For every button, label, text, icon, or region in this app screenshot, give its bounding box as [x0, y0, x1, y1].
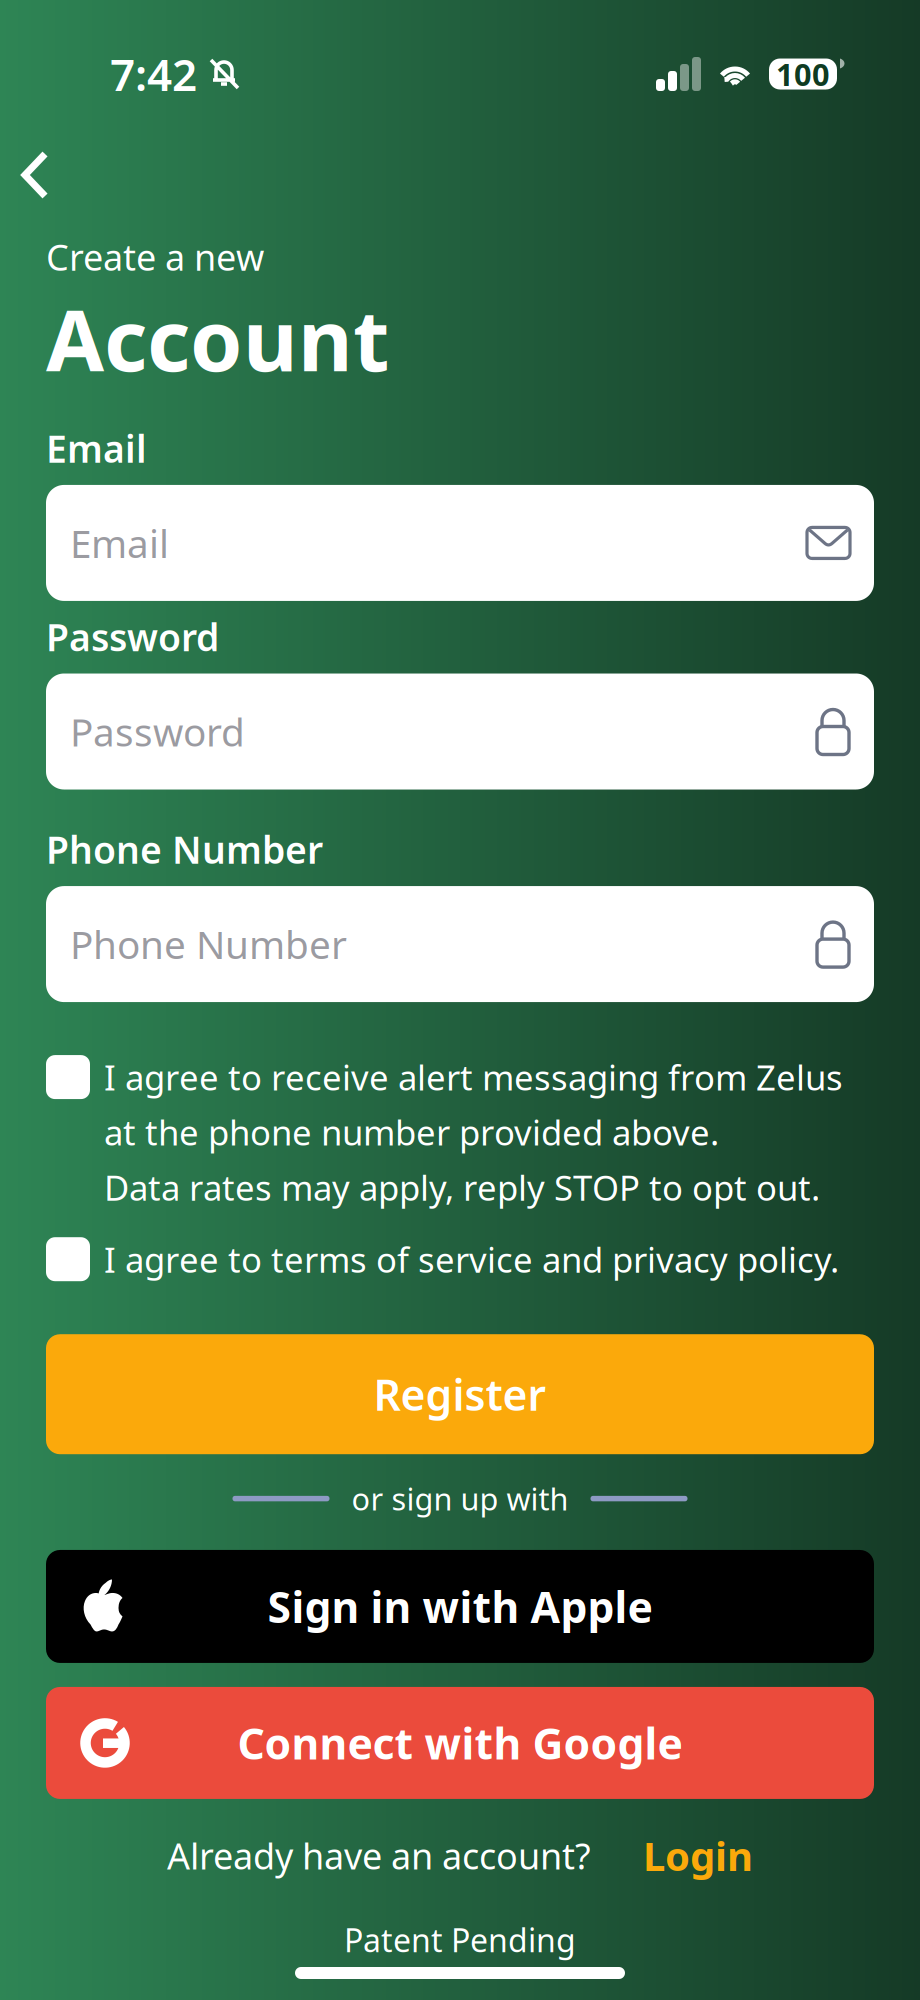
staticText: or sign up with — [351, 1478, 568, 1519]
button[interactable]: I agree to receive alert messaging from … — [46, 1054, 874, 1210]
staticText: 100 — [776, 54, 830, 94]
staticText: Account — [46, 283, 389, 394]
button[interactable]: Sign in with Apple — [46, 1550, 874, 1663]
staticText: Sign in with Apple — [267, 1578, 652, 1635]
staticText: Create a new — [46, 233, 264, 281]
staticText: I agree to receive alert messaging from … — [104, 1054, 843, 1100]
button[interactable]: Back — [0, 139, 78, 211]
staticText: Already have an account? — [167, 1832, 591, 1879]
staticText: 7:42 — [110, 45, 197, 103]
staticText: Password — [70, 706, 245, 757]
staticText: Phone Number — [70, 918, 347, 970]
staticText: Patent Pending — [344, 1918, 576, 1961]
staticText: Data rates may apply, reply STOP to opt … — [104, 1164, 820, 1210]
button[interactable]: I agree to terms of service and privacy … — [46, 1236, 874, 1282]
button[interactable]: Connect with Google — [46, 1687, 874, 1799]
staticText: Login — [643, 1829, 753, 1882]
staticText: Email — [46, 423, 147, 473]
staticText: I agree to terms of service and privacy … — [104, 1236, 839, 1282]
staticText: Phone Number — [46, 824, 323, 874]
staticText: Password — [46, 612, 219, 661]
staticText: at the phone number provided above. — [104, 1109, 719, 1155]
button[interactable]: Register — [46, 1334, 874, 1454]
button[interactable]: Login — [591, 1829, 753, 1882]
staticText: Connect with Google — [237, 1715, 682, 1771]
staticText: Email — [70, 517, 169, 569]
staticText: Register — [373, 1366, 546, 1423]
